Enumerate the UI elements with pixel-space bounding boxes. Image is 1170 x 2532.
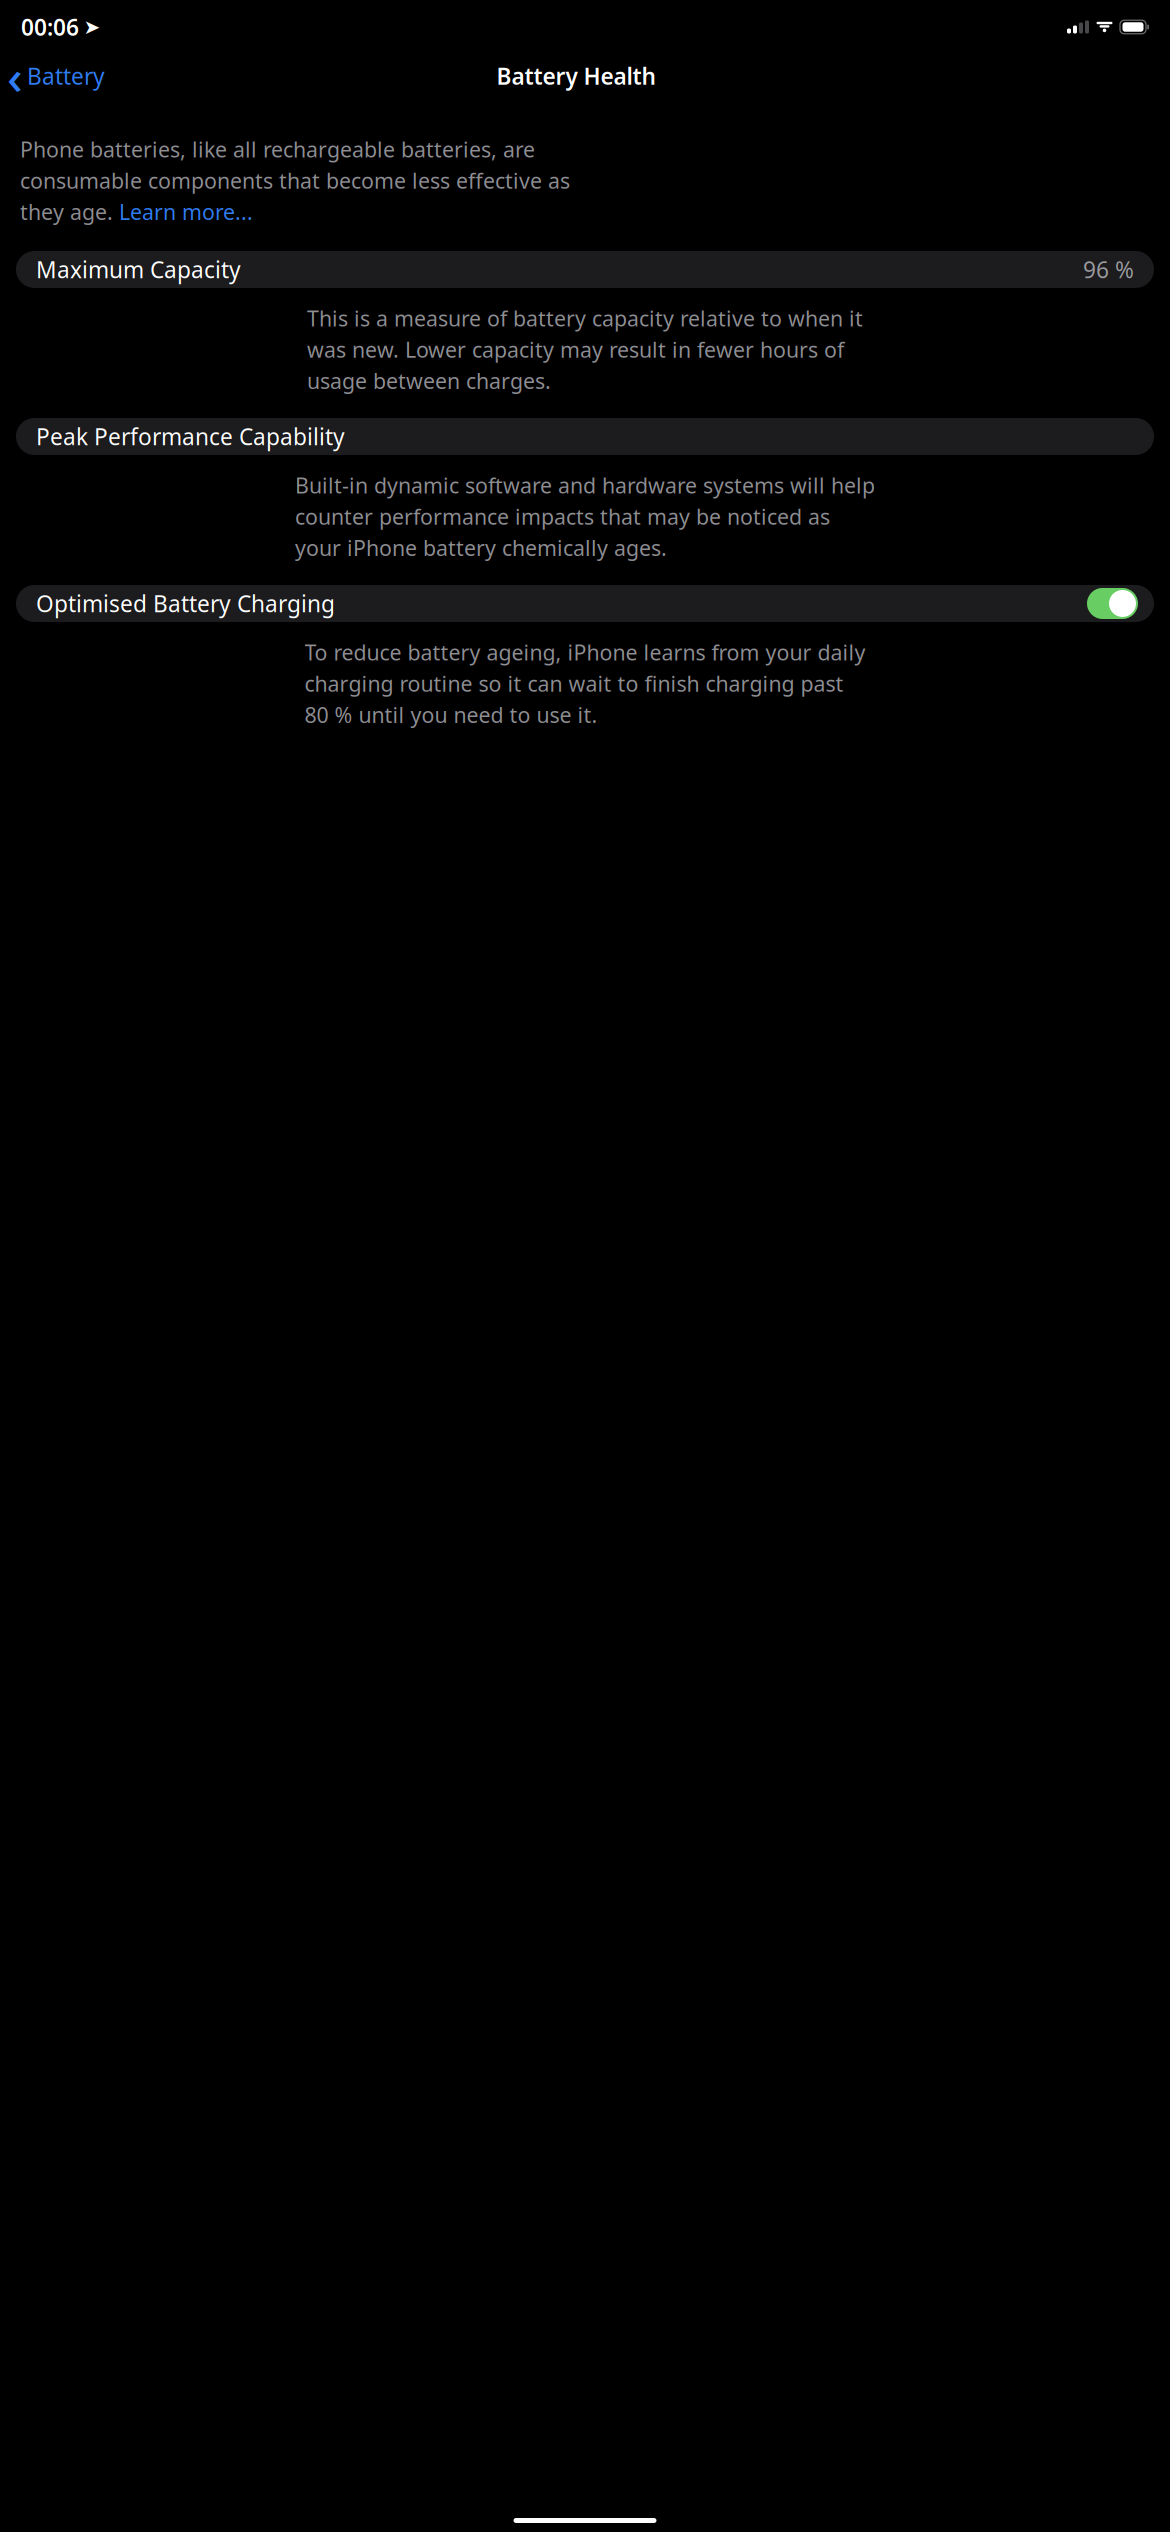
staticText: 00:06 — [21, 12, 79, 42]
staticText: usage between charges. — [307, 367, 551, 395]
button[interactable]: Optimised Battery Charging — [0, 585, 1170, 622]
staticText: This is a measure of battery capacity re… — [307, 304, 863, 332]
staticText: 96 % — [1083, 254, 1134, 284]
staticText: Peak Performance Capability — [36, 421, 345, 451]
button[interactable]: Peak Performance Capability — [0, 418, 1170, 455]
staticText: 80 % until you need to use it. — [304, 701, 597, 729]
button[interactable]: Learn more... — [119, 198, 253, 226]
staticText: your iPhone battery chemically ages. — [295, 534, 667, 562]
button[interactable]: Maximum Capacity — [0, 251, 1170, 288]
button[interactable]: ‹ — [0, 56, 105, 96]
staticText: ‹ — [7, 44, 23, 108]
staticText: charging routine so it can wait to finis… — [304, 669, 843, 698]
staticText: Maximum Capacity — [36, 254, 241, 284]
staticText: they age. — [20, 198, 119, 226]
staticText: Battery Health — [496, 61, 655, 91]
staticText: Phone batteries, like all rechargeable b… — [20, 135, 535, 163]
staticText: was new. Lower capacity may result in fe… — [307, 335, 844, 364]
staticText: Optimised Battery Charging — [36, 588, 335, 618]
staticText: ➤ — [83, 16, 100, 38]
staticText: To reduce battery ageing, iPhone learns … — [304, 638, 865, 666]
staticText: counter performance impacts that may be … — [295, 502, 830, 531]
staticText: Battery — [27, 61, 105, 91]
staticText: Built-in dynamic software and hardware s… — [295, 471, 875, 499]
staticText: consumable components that become less e… — [20, 166, 570, 195]
staticText: Learn more... — [119, 198, 253, 226]
